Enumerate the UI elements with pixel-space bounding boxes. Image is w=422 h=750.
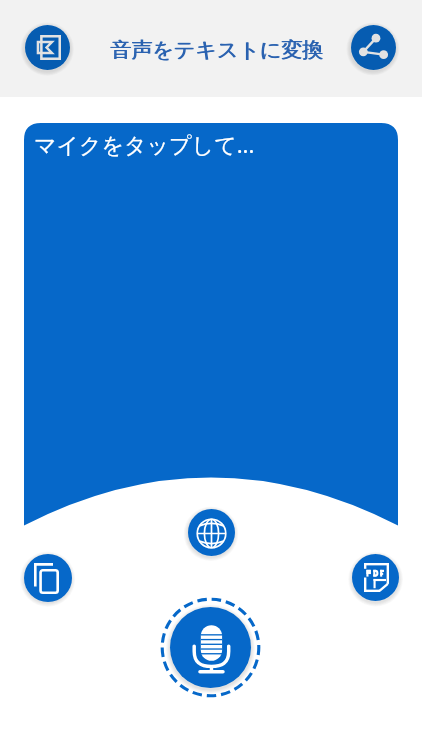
staticText: 音声をテキストに変換 [111, 37, 324, 63]
staticText: 音声をテキストに変換 [110, 37, 323, 63]
button[interactable]: Language [188, 509, 235, 556]
button[interactable]: Share [351, 25, 396, 70]
button[interactable]: Record [160, 597, 261, 698]
button[interactable]: Export PDF [352, 554, 399, 601]
button[interactable]: Convert [25, 25, 70, 70]
staticText: マイクをタップして... [34, 129, 255, 159]
button[interactable]: Copy [24, 554, 72, 602]
